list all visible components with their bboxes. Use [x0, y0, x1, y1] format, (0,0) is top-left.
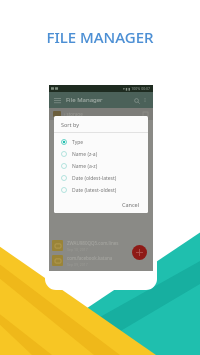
button[interactable]: Name (a-z) [54, 160, 148, 172]
staticText: › storage [64, 111, 83, 117]
staticText: Date (latest-oldest) [72, 187, 117, 194]
button[interactable]: Date (oldest-latest) [54, 172, 148, 184]
staticText: Name (z-a) [72, 151, 98, 158]
staticText: Sort by [61, 121, 80, 128]
staticText: FILE MANAGER [0, 27, 200, 47]
button[interactable]: Date (latest-oldest) [54, 184, 148, 196]
button[interactable]: More options [141, 96, 149, 104]
button[interactable]: Search [132, 96, 141, 105]
button[interactable]: ZWAU980QQ5.com.lines [49, 238, 153, 253]
button[interactable]: Type [54, 136, 148, 148]
button[interactable]: Name (z-a) [54, 148, 148, 160]
staticText: Date (oldest-latest) [72, 175, 117, 182]
staticText: com.facebook.katana [67, 255, 113, 261]
staticText: ZWAU980QQ5.com.lines [67, 240, 119, 246]
staticText: ▾ ▮ ▮ 100% 00:07 [123, 86, 151, 91]
staticText: Type [72, 139, 84, 146]
button[interactable]: Cancel [114, 198, 148, 211]
staticText: Cancel [122, 201, 140, 208]
staticText: Name (a-z) [72, 163, 98, 170]
button[interactable]: Select all [142, 111, 149, 118]
button[interactable]: Open navigation drawer [53, 96, 62, 105]
button[interactable]: com.facebook.katana [49, 253, 153, 268]
staticText: File Manager [66, 96, 103, 104]
button[interactable]: › storage [53, 108, 149, 120]
button[interactable]: Add [132, 245, 147, 260]
